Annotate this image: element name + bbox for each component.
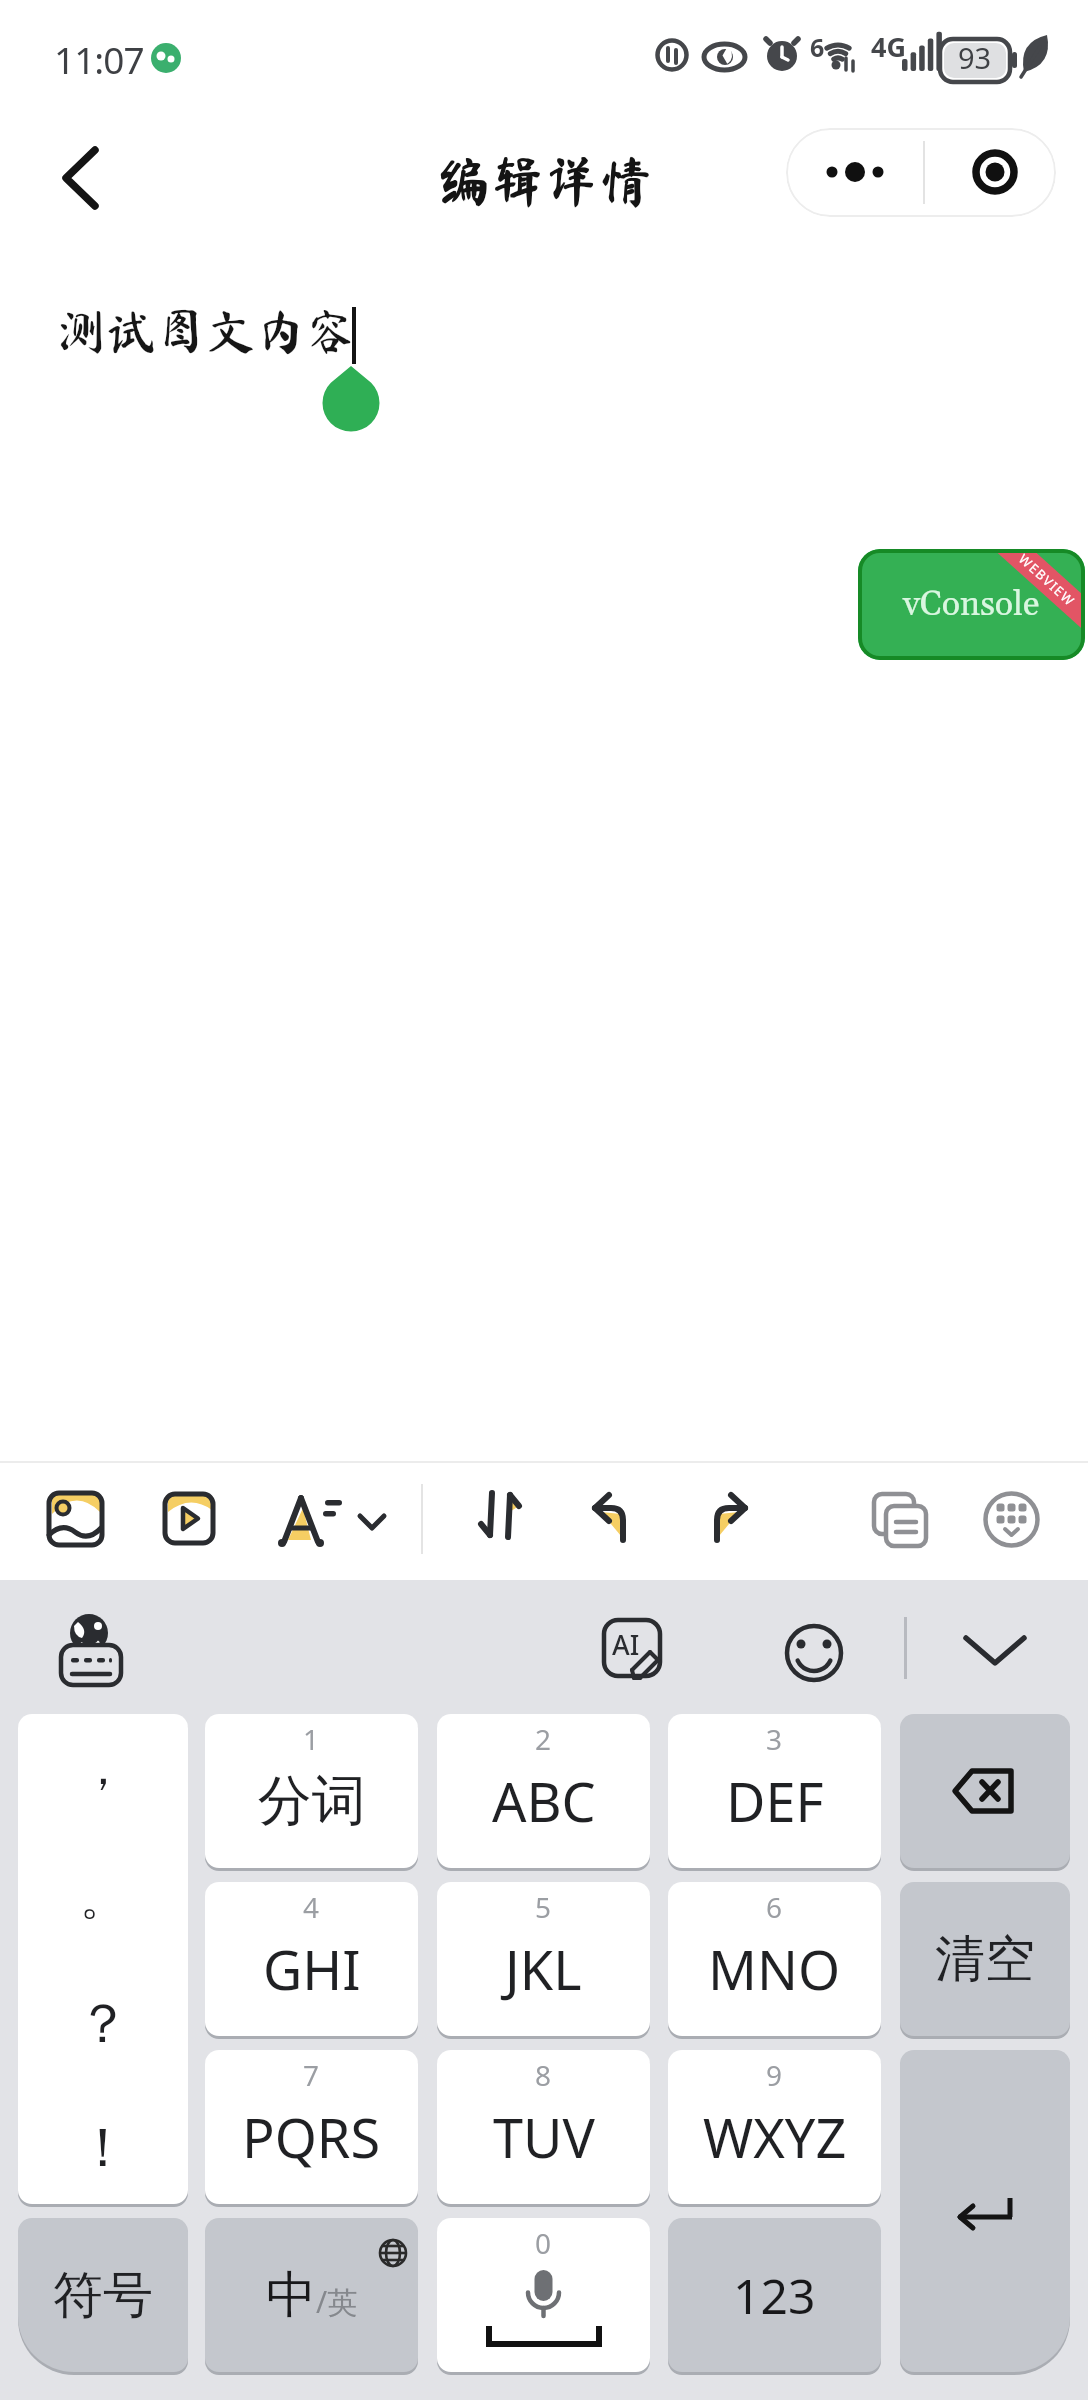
- button[interactable]: [265, 1480, 390, 1558]
- staticText: 中: [266, 2264, 316, 2327]
- button[interactable]: 0: [437, 2218, 650, 2372]
- staticText: 5: [535, 1888, 552, 1926]
- button[interactable]: AI: [586, 1600, 686, 1700]
- staticText: 3: [766, 1720, 783, 1758]
- staticText: 9: [766, 2056, 783, 2094]
- staticText: TUV: [493, 2100, 595, 2174]
- button[interactable]: [900, 2050, 1070, 2372]
- staticText: 1: [303, 1720, 320, 1758]
- button[interactable]: [940, 1600, 1050, 1700]
- staticText: 编辑详情: [436, 153, 652, 207]
- button[interactable]: 123: [668, 2218, 881, 2372]
- button[interactable]: ，: [18, 1714, 188, 2204]
- button[interactable]: 7: [205, 2050, 418, 2204]
- staticText: ，: [80, 1740, 126, 1798]
- staticText: 0: [535, 2224, 552, 2262]
- staticText: WEBVIEW: [1015, 550, 1079, 610]
- button[interactable]: [685, 1480, 765, 1558]
- button[interactable]: [575, 1480, 655, 1558]
- button[interactable]: 8: [437, 2050, 650, 2204]
- staticText: 2: [535, 1720, 552, 1758]
- staticText: 4: [303, 1888, 320, 1926]
- button[interactable]: [900, 1714, 1070, 1868]
- button[interactable]: [205, 2218, 418, 2372]
- button[interactable]: 6: [668, 1882, 881, 2036]
- staticText: DEF: [726, 1764, 824, 1838]
- button[interactable]: [155, 1484, 227, 1556]
- staticText: 编辑详情: [436, 154, 652, 208]
- staticText: ！: [76, 2114, 130, 2182]
- staticText: AI: [612, 1626, 640, 1663]
- button[interactable]: 4: [205, 1882, 418, 2036]
- button[interactable]: [765, 1603, 865, 1703]
- staticText: GHI: [263, 1932, 361, 2006]
- button[interactable]: [40, 1600, 140, 1700]
- staticText: WXYZ: [703, 2100, 847, 2174]
- staticText: ABC: [492, 1764, 596, 1838]
- button[interactable]: [921, 128, 1056, 217]
- staticText: 6: [810, 30, 825, 64]
- button[interactable]: vConsole: [858, 549, 1085, 660]
- button[interactable]: 5: [437, 1882, 650, 2036]
- staticText: 编辑详情: [437, 153, 653, 207]
- button[interactable]: [786, 128, 921, 217]
- staticText: 测试图文内容: [56, 306, 356, 356]
- button[interactable]: [38, 1482, 118, 1560]
- staticText: 93: [958, 38, 992, 77]
- staticText: 6: [766, 1888, 783, 1926]
- staticText: ？: [76, 1990, 130, 2058]
- staticText: 4G: [871, 28, 906, 65]
- staticText: 11:07: [54, 34, 144, 84]
- button[interactable]: 符号: [18, 2218, 188, 2372]
- button[interactable]: [862, 1482, 938, 1558]
- staticText: 符号: [53, 2264, 153, 2327]
- button[interactable]: 2: [437, 1714, 650, 1868]
- staticText: JKL: [505, 1932, 582, 2006]
- button[interactable]: [975, 1482, 1051, 1558]
- staticText: 7: [303, 2056, 320, 2094]
- button[interactable]: 清空: [900, 1882, 1070, 2036]
- button[interactable]: 9: [668, 2050, 881, 2204]
- staticText: 123: [733, 2263, 816, 2328]
- button[interactable]: [30, 130, 140, 226]
- button[interactable]: 3: [668, 1714, 881, 1868]
- staticText: 分词: [258, 1767, 366, 1835]
- staticText: 清空: [935, 1928, 1035, 1991]
- staticText: vConsole: [903, 583, 1040, 626]
- staticText: /英: [316, 2281, 358, 2322]
- button[interactable]: 1: [205, 1714, 418, 1868]
- staticText: PQRS: [242, 2100, 381, 2174]
- staticText: 8: [535, 2056, 552, 2094]
- button[interactable]: [462, 1480, 538, 1558]
- staticText: 。: [80, 1870, 126, 1928]
- staticText: MNO: [708, 1932, 841, 2006]
